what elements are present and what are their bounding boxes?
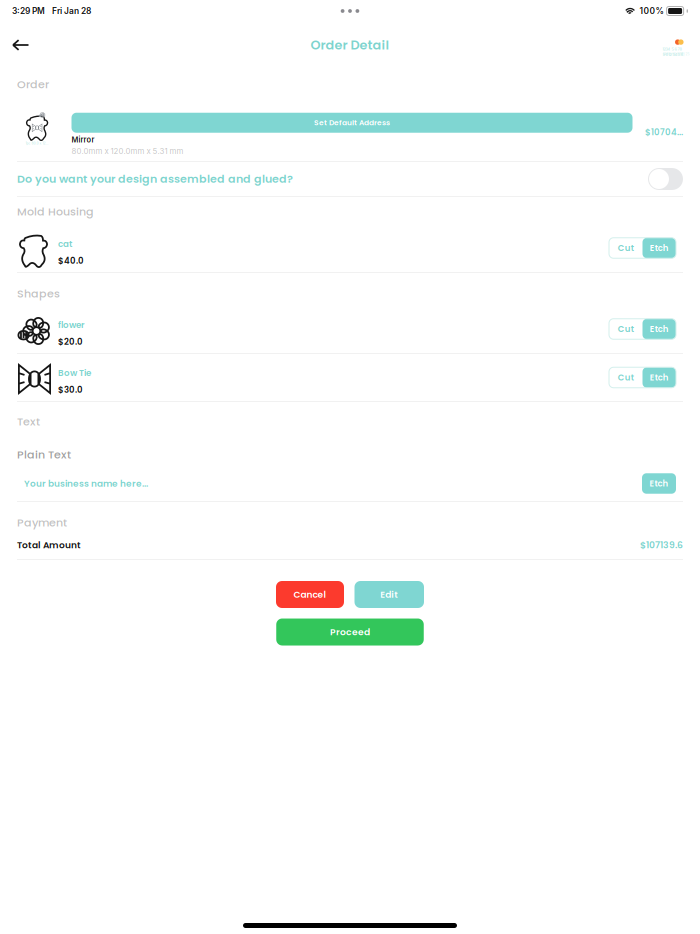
staticText: $10704... [645, 126, 683, 138]
staticText: Cancel [293, 588, 326, 601]
button[interactable]: Etch [642, 319, 676, 339]
button[interactable]: Etch [642, 367, 676, 388]
staticText: Etch [650, 242, 669, 254]
staticText: 80.0mm x 120.0mm x 5.31 mm [71, 146, 183, 156]
staticText: CARD HOLDER [662, 52, 683, 56]
staticText: flower [58, 319, 85, 331]
staticText: 1234 5678 9012 3456 [662, 46, 683, 57]
staticText: Etch [650, 323, 669, 335]
button[interactable]: Etch [642, 238, 676, 258]
staticText: $107139.6 [640, 539, 683, 551]
button[interactable]: Assembled and glued [648, 168, 683, 190]
button[interactable]: Cancel [276, 581, 344, 608]
staticText: Mirror [71, 135, 94, 144]
button[interactable]: flower [17, 305, 683, 353]
button[interactable]: Etch [642, 473, 676, 494]
staticText: Proceed [330, 626, 370, 638]
button[interactable]: Cut [609, 238, 642, 258]
staticText: Cut [618, 242, 634, 254]
staticText: Order Detail [310, 36, 389, 54]
staticText: Fri Jan 28 [52, 6, 91, 16]
button[interactable]: Set Default Address [71, 113, 632, 133]
staticText: Edit [380, 588, 398, 601]
staticText: $40.0 [58, 255, 84, 267]
staticText: $30.0 [58, 384, 83, 396]
staticText: Bow Tie [58, 367, 91, 379]
button[interactable]: Bow Tie [17, 354, 683, 401]
staticText: cat [58, 238, 72, 250]
staticText: Etch [650, 371, 669, 383]
button[interactable]: Back [0, 26, 42, 64]
button[interactable]: Cut [609, 367, 642, 388]
button[interactable]: cat [17, 224, 683, 272]
button[interactable]: Proceed [276, 618, 424, 645]
staticText: Cut [618, 371, 634, 383]
button[interactable]: Edit [354, 581, 424, 608]
staticText: 3:29 PM [12, 6, 45, 16]
staticText: Order [17, 77, 49, 92]
staticText: 1pc 80.0 x 120.0mm [26, 141, 50, 145]
staticText: Do you want your design assembled and gl… [17, 171, 293, 187]
button[interactable]: Cut [609, 319, 642, 339]
staticText: Total Amount [17, 539, 81, 551]
staticText: Plain Text [17, 447, 71, 462]
staticText: Your business name here... [24, 477, 148, 490]
staticText: Text [17, 414, 40, 429]
staticText: Etch [649, 477, 668, 489]
staticText: Shapes [17, 286, 60, 301]
staticText: Mold Housing [17, 204, 94, 219]
staticText: Payment [17, 515, 67, 530]
staticText: 12/25 [680, 52, 689, 56]
staticText: Set Default Address [314, 117, 390, 128]
staticText: 100% [640, 6, 664, 16]
staticText: $20.0 [58, 336, 83, 348]
staticText: Cut [618, 323, 634, 335]
